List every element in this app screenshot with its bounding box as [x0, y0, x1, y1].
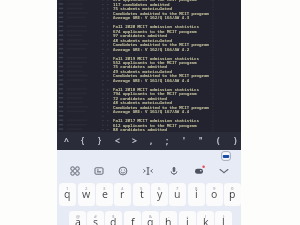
button[interactable]: ,	[143, 132, 159, 150]
staticText: 88 candidates admitted	[113, 127, 168, 133]
button[interactable]: Close keyboard	[214, 161, 234, 181]
staticText: Candidates admitted to the MCIT program	[113, 11, 209, 17]
staticText: 5	[140, 185, 143, 191]
staticText: h	[165, 215, 172, 225]
staticText: #	[94, 213, 97, 219]
staticText: 49 students matriculated	[113, 69, 172, 75]
button[interactable]: 7	[169, 183, 186, 206]
staticText: 552 applicants to the MCIT program	[113, 60, 197, 66]
staticText: 6	[158, 185, 161, 191]
button[interactable]: Text editing	[138, 161, 158, 181]
button[interactable]: 674 applicants to the MCIT program	[57, 0, 241, 132]
staticText: @	[76, 213, 80, 219]
button[interactable]: 8	[188, 183, 205, 206]
staticText: 674 applicants to the MCIT program	[113, 29, 197, 35]
button[interactable]: &	[142, 211, 159, 225]
button[interactable]: 5	[133, 183, 150, 206]
staticText: 117 candidates admitted	[113, 2, 170, 8]
staticText: "	[199, 135, 203, 147]
button[interactable]: "	[193, 132, 209, 150]
button[interactable]: '	[176, 132, 192, 150]
button[interactable]: Games	[189, 161, 209, 181]
staticText: '	[183, 135, 185, 147]
button[interactable]: (	[197, 211, 214, 225]
button[interactable]: 0	[224, 183, 241, 206]
button[interactable]: $	[105, 211, 122, 225]
button[interactable]: #	[87, 211, 104, 225]
staticText: &	[149, 213, 153, 219]
staticText: k	[203, 215, 209, 225]
staticText: )	[234, 135, 237, 147]
button[interactable]: 6	[151, 183, 168, 206]
button[interactable]: ^	[58, 132, 74, 150]
button[interactable]: <	[109, 132, 125, 150]
staticText: g	[147, 215, 154, 225]
staticText: >	[132, 135, 137, 147]
button[interactable]: {	[75, 132, 91, 150]
button[interactable]: Stickers	[89, 161, 109, 181]
staticText: f	[131, 215, 135, 225]
button[interactable]: )	[215, 211, 232, 225]
button[interactable]: 3	[96, 183, 113, 206]
button[interactable]: 4	[114, 183, 131, 206]
staticText: 75 students matriculated	[113, 6, 172, 12]
staticText: 72 candidates admitted	[113, 96, 168, 102]
staticText: 8	[195, 185, 198, 191]
staticText: 794 applicants to the MCIT program	[113, 91, 197, 97]
button[interactable]: +	[179, 211, 196, 225]
button[interactable]: ;	[159, 132, 175, 150]
staticText: {	[81, 135, 85, 147]
staticText: (	[217, 135, 220, 147]
staticText: t	[140, 187, 144, 201]
staticText: Average GRE: V 161/Q 167/AW 4.4	[113, 109, 190, 115]
button[interactable]: Clipboard	[65, 161, 85, 181]
button[interactable]: 1	[59, 183, 76, 206]
button[interactable]: Emoji	[113, 161, 133, 181]
button[interactable]: @	[69, 211, 86, 225]
staticText: y	[157, 187, 163, 201]
staticText: i	[195, 187, 198, 201]
staticText: 0	[231, 185, 234, 191]
button[interactable]: >	[126, 132, 142, 150]
staticText: 1	[66, 185, 69, 191]
button[interactable]: _	[124, 211, 141, 225]
button[interactable]: )	[227, 132, 243, 150]
staticText: 3	[103, 185, 106, 191]
staticText: 2	[85, 185, 88, 191]
staticText: <	[115, 135, 120, 147]
staticText: Fall 2018 MCIT admission statistics	[113, 87, 199, 93]
staticText: _	[132, 213, 134, 219]
staticText: Candidates admitted to the MCIT program	[113, 105, 209, 111]
staticText: 612 applicants to the MCIT program	[113, 123, 197, 129]
staticText: 48 students matriculated	[113, 100, 172, 106]
staticText: 674 applicants to the MCIT program	[113, 0, 197, 3]
staticText: Fall 2020 MCIT admission statistics	[113, 24, 199, 30]
staticText: r	[120, 187, 125, 201]
button[interactable]: 9	[206, 183, 223, 206]
button[interactable]: Switch keyboard	[219, 149, 233, 163]
staticText: ,	[150, 135, 153, 147]
staticText: 9	[213, 185, 216, 191]
staticText: 75 candidates admitted	[113, 64, 168, 70]
staticText: 4	[121, 185, 124, 191]
staticText: o	[211, 187, 218, 201]
staticText: e	[102, 187, 108, 201]
staticText: u	[174, 187, 181, 201]
staticText: a	[75, 215, 81, 225]
staticText: (	[205, 213, 207, 219]
staticText: p	[229, 187, 236, 201]
staticText: s	[93, 215, 99, 225]
button[interactable]: }	[92, 132, 108, 150]
staticText: l	[222, 215, 225, 225]
button[interactable]: -	[160, 211, 177, 225]
button[interactable]: 2	[78, 183, 95, 206]
staticText: ;	[166, 135, 169, 147]
staticText: Average GRE: V 162/Q 166/AW 4.2	[113, 47, 190, 53]
staticText: Average GRE: V 162/Q 165/AW 4.3	[113, 15, 190, 21]
staticText: Average GRE: V 161/Q 166/AW 4.4	[113, 78, 190, 84]
staticText: w	[82, 187, 91, 201]
staticText: -	[168, 213, 170, 219]
button[interactable]: (	[210, 132, 226, 150]
staticText: $	[112, 213, 115, 219]
button[interactable]: Voice input	[164, 161, 184, 181]
